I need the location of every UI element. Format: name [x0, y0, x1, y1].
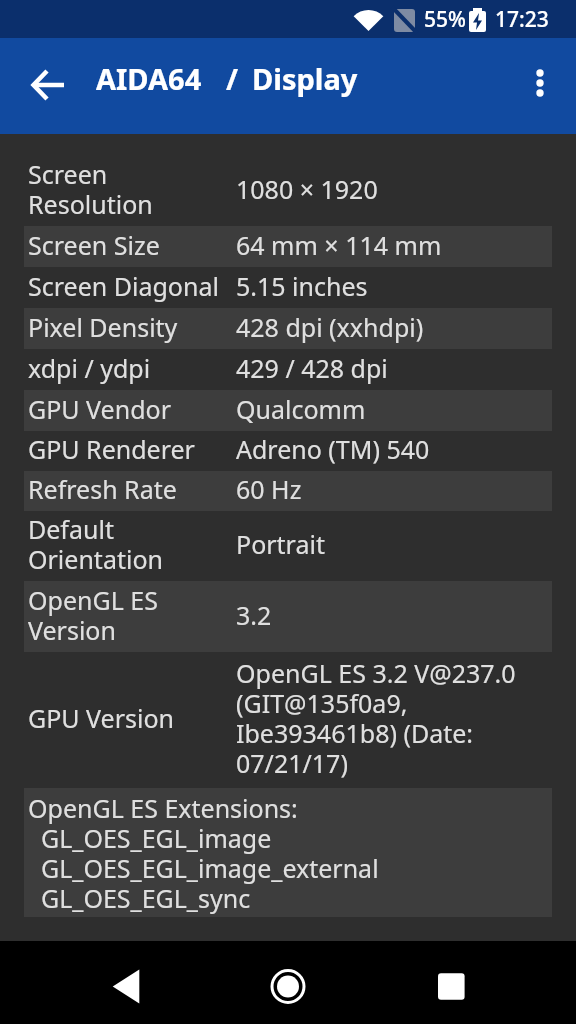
staticText: Adreno (TM) 540 [236, 432, 430, 466]
staticText: Portrait [236, 527, 325, 561]
button[interactable]: Pixel Density [24, 308, 552, 349]
staticText: 1080 × 1920 [236, 172, 378, 206]
button[interactable]: Screen Size [24, 226, 552, 267]
button[interactable] [520, 63, 560, 103]
staticText: 5.15 inches [236, 269, 368, 303]
button[interactable]: Default Orientation [24, 511, 552, 581]
button[interactable]: OpenGL ES Extensions: GL_OES_EGL_image G… [24, 788, 552, 917]
staticText: GPU Version [28, 701, 175, 735]
button[interactable]: Screen Diagonal [24, 267, 552, 308]
staticText: Display [252, 59, 358, 98]
staticText: Qualcomm [236, 392, 366, 426]
staticText: 429 / 428 dpi [236, 351, 388, 385]
button[interactable]: Refresh Rate [24, 471, 552, 511]
staticText: OpenGL ES Version [28, 583, 158, 647]
button[interactable]: Screen Resolution [24, 155, 552, 226]
staticText: GPU Renderer [28, 432, 195, 466]
staticText: OpenGL ES 3.2 V@237.0 (GIT@135f0a9, Ibe3… [236, 656, 516, 780]
staticText: xdpi / ydpi [28, 351, 151, 385]
button[interactable] [22, 59, 74, 111]
button[interactable]: xdpi / ydpi [24, 349, 552, 390]
staticText: Screen Size [28, 228, 160, 262]
button[interactable] [0, 941, 192, 1024]
staticText: Pixel Density [28, 310, 178, 344]
button[interactable]: OpenGL ES Version [24, 581, 552, 652]
staticText: 428 dpi (xxhdpi) [236, 310, 424, 344]
staticText: Screen Diagonal [28, 269, 219, 303]
staticText: 17:23 [495, 5, 549, 34]
button[interactable]: GPU Renderer [24, 431, 552, 471]
staticText: 60 Hz [236, 472, 302, 506]
staticText: AIDA64 [96, 59, 202, 98]
staticText: Default Orientation [28, 512, 163, 576]
staticText: 55% [424, 5, 466, 34]
staticText: 3.2 [236, 598, 272, 632]
staticText: GPU Vendor [28, 392, 171, 426]
staticText: OpenGL ES Extensions: GL_OES_EGL_image G… [28, 791, 379, 915]
staticText: Screen Resolution [28, 157, 153, 221]
staticText: Refresh Rate [28, 472, 177, 506]
button[interactable]: GPU Version [24, 652, 552, 788]
button[interactable] [384, 941, 576, 1024]
staticText: / [226, 59, 239, 98]
button[interactable]: GPU Vendor [24, 390, 552, 431]
button[interactable] [192, 941, 384, 1024]
staticText: 64 mm × 114 mm [236, 228, 442, 262]
